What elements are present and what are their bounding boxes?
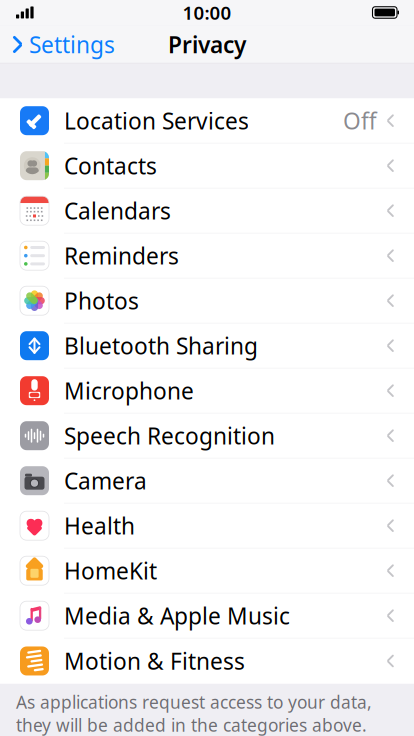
button[interactable]: Contacts xyxy=(0,143,414,188)
staticText: Off xyxy=(343,106,377,136)
button[interactable]: Speech Recognition xyxy=(0,413,414,458)
staticText: Speech Recognition xyxy=(64,421,275,451)
button[interactable]: Microphone xyxy=(0,368,414,413)
staticText: Location Services xyxy=(64,106,249,136)
staticText: Health xyxy=(64,511,135,541)
staticText: Reminders xyxy=(64,241,179,271)
staticText: 10:00 xyxy=(182,0,231,25)
staticText: As applications request access to your d… xyxy=(16,690,372,736)
button[interactable]: HomeKit xyxy=(0,548,414,593)
button[interactable]: Motion & Fitness xyxy=(0,638,414,683)
staticText: Calendars xyxy=(64,196,171,226)
button[interactable]: Settings xyxy=(0,23,115,65)
staticText: Settings xyxy=(29,29,115,59)
staticText: Bluetooth Sharing xyxy=(64,331,258,361)
button[interactable]: Bluetooth Sharing xyxy=(0,323,414,368)
staticText: Privacy xyxy=(168,29,246,59)
button[interactable]: Health xyxy=(0,503,414,548)
button[interactable]: Photos xyxy=(0,278,414,323)
button[interactable]: Location Services xyxy=(0,98,414,143)
staticText: HomeKit xyxy=(64,556,157,586)
button[interactable]: Reminders xyxy=(0,233,414,278)
staticText: Contacts xyxy=(64,151,157,181)
button[interactable]: Camera xyxy=(0,458,414,503)
staticText: Camera xyxy=(64,466,147,496)
button[interactable]: Calendars xyxy=(0,188,414,233)
staticText: Microphone xyxy=(64,376,194,406)
staticText: Photos xyxy=(64,286,139,316)
staticText: Motion & Fitness xyxy=(64,646,245,676)
button[interactable]: Media & Apple Music xyxy=(0,593,414,638)
staticText: Media & Apple Music xyxy=(64,601,290,631)
